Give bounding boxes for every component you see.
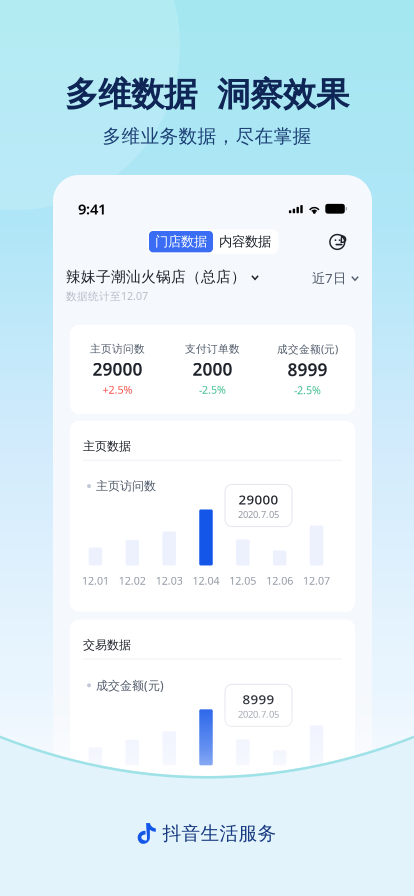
button[interactable]: 辣妹子潮汕火锅店（总店）: [66, 268, 259, 286]
staticText: 12.03: [156, 573, 183, 588]
button[interactable]: Customer service: [329, 233, 347, 250]
button[interactable]: 门店数据: [149, 231, 213, 252]
staticText: 12.05: [229, 773, 256, 787]
button[interactable]: 近7日: [312, 269, 359, 287]
staticText: 2000: [192, 357, 232, 380]
staticText: 主页访问数: [96, 479, 156, 493]
staticText: 成交金额(元): [96, 677, 164, 693]
staticText: 8999: [242, 690, 274, 708]
staticText: 12.04: [192, 773, 219, 787]
staticText: -2.5%: [199, 382, 226, 397]
staticText: 12.02: [119, 773, 146, 787]
staticText: 内容数据: [219, 233, 271, 250]
staticText: 主页访问数: [90, 342, 145, 355]
staticText: 2020.7.05: [238, 708, 279, 720]
staticText: 门店数据: [155, 233, 207, 250]
staticText: 抖音生活服务: [162, 822, 276, 845]
staticText: 12.04: [192, 573, 219, 588]
staticText: 多维业务数据，尽在掌握: [102, 125, 311, 148]
staticText: 辣妹子潮汕火锅店（总店）: [66, 268, 246, 286]
staticText: 数据统计至12.07: [66, 289, 148, 303]
staticText: 12.07: [303, 573, 330, 588]
staticText: -2.5%: [294, 383, 321, 397]
staticText: 成交金额(元): [277, 342, 338, 356]
staticText: 12.06: [266, 773, 293, 787]
staticText: 29000: [238, 490, 278, 508]
staticText: 12.01: [82, 573, 109, 588]
staticText: 支付订单数: [185, 342, 240, 355]
button[interactable]: 内容数据: [213, 231, 277, 252]
staticText: 多维数据 洞察效果: [65, 74, 349, 115]
staticText: 12.03: [156, 773, 183, 787]
staticText: +2.5%: [102, 382, 132, 397]
staticText: 2020.7.05: [238, 508, 279, 521]
staticText: 12.05: [229, 573, 256, 588]
staticText: 交易数据: [83, 638, 131, 652]
staticText: 12.02: [119, 573, 146, 588]
staticText: 29000: [92, 357, 142, 380]
staticText: 9:41: [78, 199, 106, 218]
staticText: 主页数据: [83, 439, 131, 454]
staticText: 12.06: [266, 573, 293, 588]
staticText: 近7日: [312, 269, 346, 287]
staticText: 8999: [287, 358, 327, 381]
